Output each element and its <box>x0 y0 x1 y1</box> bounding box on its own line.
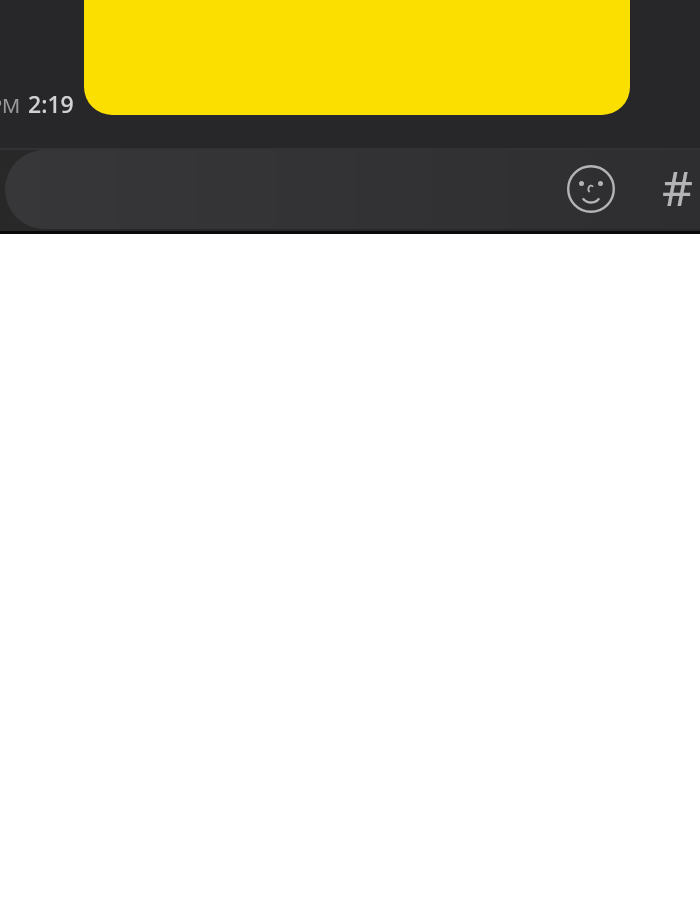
button[interactable]: Emoji <box>562 160 620 218</box>
staticText: 2:19 <box>28 88 74 119</box>
button[interactable]: Hashtag <box>649 155 700 213</box>
staticText: PM <box>0 92 21 119</box>
button[interactable]: Message input field <box>5 150 700 229</box>
button[interactable] <box>84 0 630 115</box>
staticText: # <box>662 155 694 213</box>
